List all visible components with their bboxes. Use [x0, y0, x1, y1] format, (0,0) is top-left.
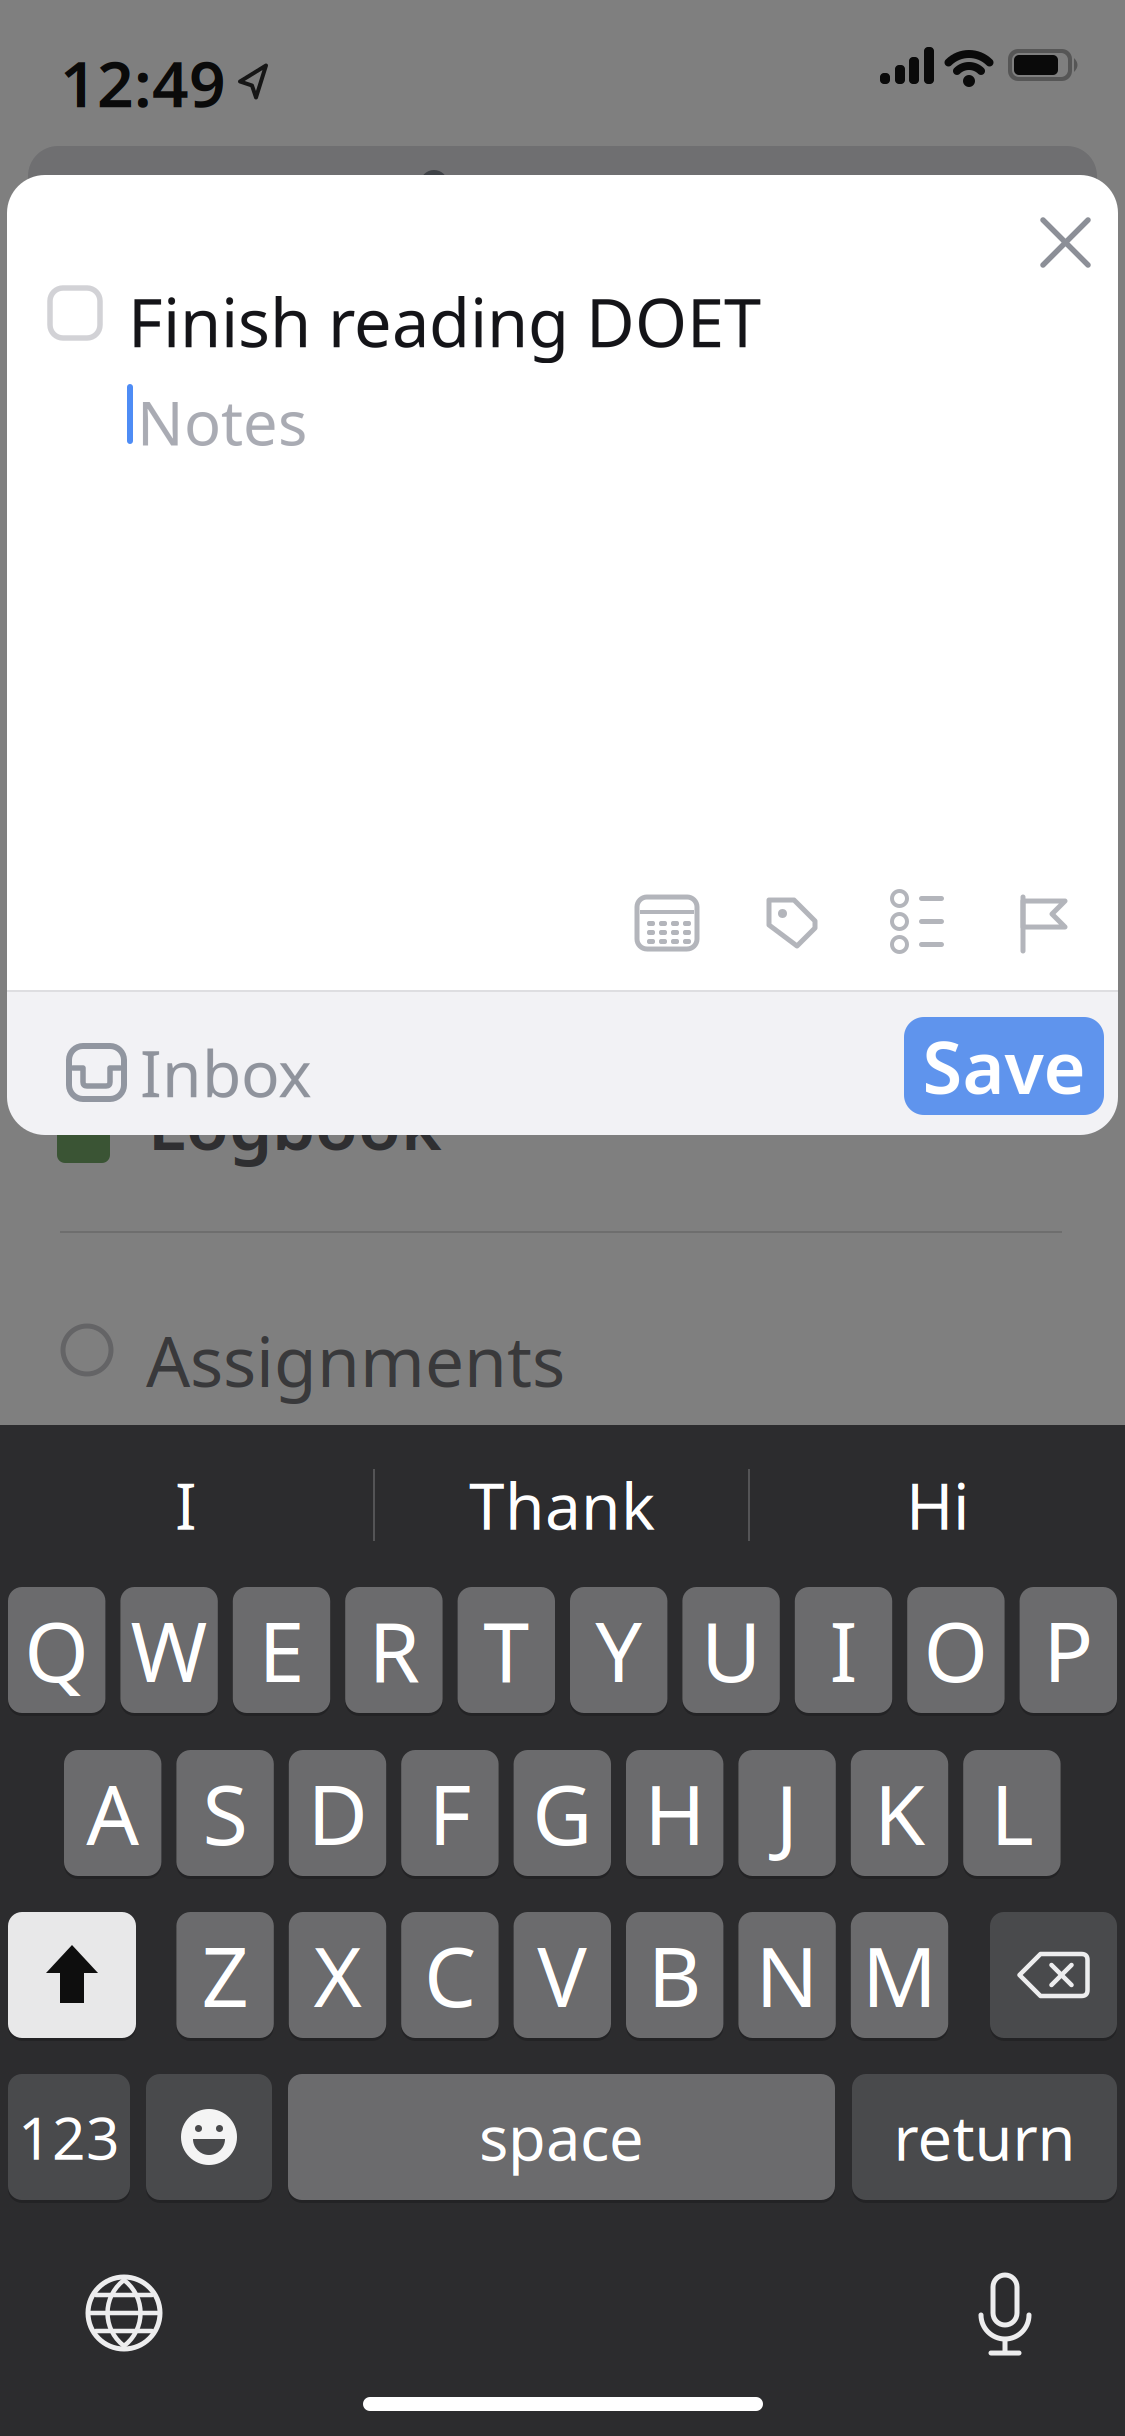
- button[interactable]: J: [738, 1750, 836, 1876]
- button[interactable]: space: [288, 2074, 835, 2200]
- button[interactable]: Q: [8, 1587, 105, 1713]
- staticText: P: [1043, 1595, 1093, 1705]
- staticText: R: [368, 1595, 419, 1705]
- staticText: W: [131, 1595, 208, 1705]
- button[interactable]: V: [514, 1912, 611, 2038]
- button[interactable]: Mark as completed: [50, 288, 100, 338]
- staticText: M: [862, 1920, 937, 2030]
- staticText: F: [428, 1758, 471, 1868]
- staticText: Y: [595, 1595, 642, 1705]
- button[interactable]: Save: [904, 1017, 1104, 1115]
- staticText: T: [483, 1595, 529, 1705]
- button[interactable]: R: [345, 1587, 443, 1713]
- button[interactable]: Next keyboard: [88, 2277, 160, 2349]
- staticText: O: [923, 1595, 988, 1705]
- button[interactable]: L: [963, 1750, 1061, 1876]
- staticText: L: [990, 1758, 1033, 1868]
- button[interactable]: H: [626, 1750, 723, 1876]
- button[interactable]: C: [401, 1912, 499, 2038]
- staticText: G: [532, 1758, 592, 1868]
- button[interactable]: Thank: [378, 1453, 746, 1557]
- staticText: J: [776, 1758, 799, 1868]
- button[interactable]: P: [1020, 1587, 1117, 1713]
- staticText: S: [203, 1758, 248, 1868]
- staticText: E: [258, 1595, 304, 1705]
- staticText: A: [86, 1758, 139, 1868]
- staticText: X: [313, 1920, 361, 2030]
- staticText: Inbox: [140, 1030, 312, 1115]
- button[interactable]: Emoji: [146, 2074, 272, 2200]
- button[interactable]: Shift: [8, 1912, 136, 2038]
- button[interactable]: M: [851, 1912, 948, 2038]
- staticText: H: [644, 1758, 705, 1868]
- staticText: 12:49: [60, 40, 226, 125]
- button[interactable]: D: [289, 1750, 386, 1876]
- staticText: N: [756, 1920, 819, 2030]
- button[interactable]: Y: [570, 1587, 667, 1713]
- staticText: I: [175, 1462, 197, 1547]
- staticText: I: [829, 1595, 857, 1705]
- button[interactable]: List: Inbox: [69, 1030, 312, 1115]
- staticText: Thank: [469, 1462, 655, 1547]
- staticText: Notes: [137, 381, 307, 462]
- button[interactable]: S: [176, 1750, 274, 1876]
- button[interactable]: W: [120, 1587, 218, 1713]
- staticText: Z: [202, 1920, 249, 2030]
- button[interactable]: Tags: [765, 896, 819, 950]
- staticText: Q: [24, 1595, 89, 1705]
- button[interactable]: E: [233, 1587, 330, 1713]
- staticText: C: [424, 1920, 476, 2030]
- staticText: Logbook: [148, 1077, 442, 1169]
- button[interactable]: Hi: [754, 1453, 1122, 1557]
- staticText: V: [537, 1920, 587, 2030]
- button[interactable]: Dictation: [977, 2271, 1033, 2355]
- button[interactable]: A: [64, 1750, 161, 1876]
- button[interactable]: T: [458, 1587, 555, 1713]
- button[interactable]: K: [851, 1750, 948, 1876]
- button[interactable]: Deadline: [1016, 895, 1070, 953]
- button[interactable]: F: [401, 1750, 499, 1876]
- staticText: U: [701, 1595, 761, 1705]
- button[interactable]: Checklist: [892, 891, 946, 952]
- button[interactable]: return: [852, 2074, 1117, 2200]
- staticText: K: [874, 1758, 925, 1868]
- staticText: 123: [18, 2098, 120, 2176]
- button[interactable]: Close: [1027, 204, 1103, 280]
- staticText: space: [479, 2096, 644, 2178]
- button[interactable]: X: [289, 1912, 386, 2038]
- button[interactable]: N: [738, 1912, 836, 2038]
- staticText: return: [893, 2096, 1075, 2178]
- button[interactable]: I: [2, 1453, 370, 1557]
- button[interactable]: I: [795, 1587, 892, 1713]
- button[interactable]: Delete: [990, 1912, 1117, 2038]
- button[interactable]: O: [907, 1587, 1005, 1713]
- staticText: Assignments: [146, 1314, 565, 1406]
- button[interactable]: U: [682, 1587, 780, 1713]
- button[interactable]: G: [514, 1750, 611, 1876]
- staticText: Save: [922, 1018, 1085, 1114]
- staticText: Finish reading DOET: [128, 277, 761, 365]
- button[interactable]: B: [626, 1912, 723, 2038]
- button[interactable]: When: [637, 897, 697, 951]
- button[interactable]: 123: [8, 2074, 130, 2200]
- staticText: D: [307, 1758, 367, 1868]
- button[interactable]: Z: [176, 1912, 274, 2038]
- staticText: Hi: [906, 1462, 970, 1547]
- staticText: B: [648, 1920, 702, 2030]
